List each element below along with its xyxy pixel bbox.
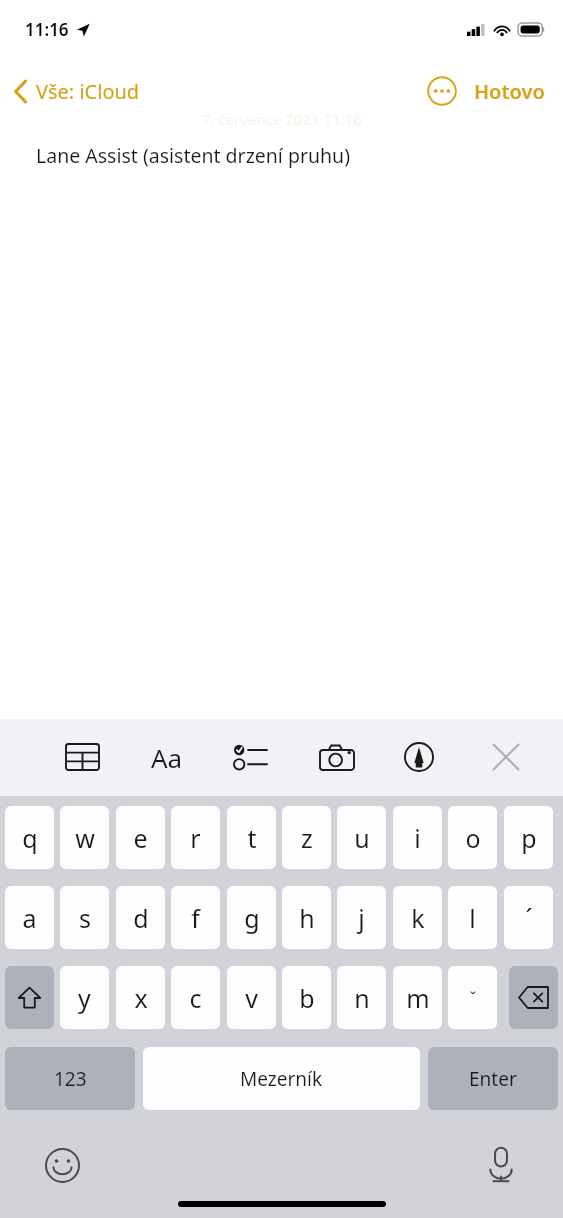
staticText: z: [301, 821, 313, 855]
button[interactable]: d: [116, 886, 165, 949]
button[interactable]: t: [227, 806, 276, 869]
staticText: Lane Assist (asistent drzení pruhu): [36, 142, 351, 169]
button[interactable]: v: [227, 966, 276, 1029]
button[interactable]: Markup: [393, 731, 445, 783]
button[interactable]: Vše: iCloud: [14, 78, 140, 105]
staticText: 11:16: [25, 18, 69, 41]
staticText: j: [358, 901, 365, 935]
staticText: v: [245, 981, 258, 1015]
button[interactable]: Camera: [311, 731, 363, 783]
button[interactable]: g: [227, 886, 276, 949]
button[interactable]: Dictation: [475, 1139, 527, 1191]
staticText: w: [75, 821, 95, 855]
staticText: Vše: iCloud: [36, 78, 140, 105]
button[interactable]: e: [116, 806, 165, 869]
button[interactable]: h: [282, 886, 331, 949]
staticText: g: [244, 901, 260, 935]
staticText: l: [469, 901, 476, 935]
button[interactable]: Shift: [5, 966, 54, 1029]
button[interactable]: Checklist: [224, 731, 276, 783]
staticText: ˇ: [469, 986, 477, 1009]
button[interactable]: w: [60, 806, 109, 869]
button[interactable]: x: [116, 966, 165, 1029]
staticText: i: [414, 821, 421, 855]
button[interactable]: l: [448, 886, 497, 949]
staticText: p: [521, 821, 537, 855]
button[interactable]: i: [393, 806, 442, 869]
staticText: y: [78, 981, 91, 1015]
button[interactable]: n: [337, 966, 386, 1029]
staticText: t: [247, 821, 257, 855]
button[interactable]: z: [282, 806, 331, 869]
button[interactable]: More options: [426, 75, 458, 107]
staticText: ´: [525, 901, 533, 935]
button[interactable]: Text format: [141, 731, 193, 783]
button[interactable]: y: [60, 966, 109, 1029]
button[interactable]: f: [171, 886, 220, 949]
button[interactable]: a: [5, 886, 54, 949]
staticText: n: [354, 981, 370, 1015]
button[interactable]: Enter: [428, 1047, 558, 1110]
staticText: Enter: [469, 1066, 517, 1092]
staticText: h: [299, 901, 315, 935]
staticText: Aa: [151, 740, 183, 775]
button[interactable]: Emoji: [36, 1139, 88, 1191]
staticText: q: [22, 821, 38, 855]
staticText: b: [299, 981, 315, 1015]
staticText: 7. července 2021 11:16: [202, 109, 362, 129]
button[interactable]: Mezerník: [143, 1047, 420, 1110]
button[interactable]: Backspace: [509, 966, 558, 1029]
button[interactable]: b: [282, 966, 331, 1029]
button[interactable]: Close keyboard: [480, 731, 532, 783]
staticText: Hotovo: [474, 78, 545, 105]
button[interactable]: ˇ: [448, 966, 497, 1029]
button[interactable]: 123: [5, 1047, 135, 1110]
button[interactable]: r: [171, 806, 220, 869]
button[interactable]: Table: [56, 731, 108, 783]
button[interactable]: ´: [504, 886, 553, 949]
staticText: Mezerník: [240, 1066, 323, 1092]
staticText: m: [406, 981, 430, 1015]
staticText: k: [411, 901, 425, 935]
button[interactable]: m: [393, 966, 442, 1029]
staticText: 123: [54, 1066, 87, 1092]
button[interactable]: s: [60, 886, 109, 949]
button[interactable]: q: [5, 806, 54, 869]
button[interactable]: c: [171, 966, 220, 1029]
staticText: s: [79, 901, 91, 935]
staticText: o: [465, 821, 481, 855]
button[interactable]: Hotovo: [474, 78, 545, 105]
staticText: d: [133, 901, 149, 935]
staticText: x: [134, 981, 148, 1015]
button[interactable]: u: [337, 806, 386, 869]
staticText: a: [22, 901, 37, 935]
button[interactable]: k: [393, 886, 442, 949]
staticText: c: [189, 981, 202, 1015]
staticText: u: [354, 821, 370, 855]
staticText: e: [133, 821, 148, 855]
button[interactable]: p: [504, 806, 553, 869]
button[interactable]: j: [337, 886, 386, 949]
staticText: f: [191, 901, 200, 935]
staticText: r: [190, 821, 201, 855]
button[interactable]: o: [448, 806, 497, 869]
